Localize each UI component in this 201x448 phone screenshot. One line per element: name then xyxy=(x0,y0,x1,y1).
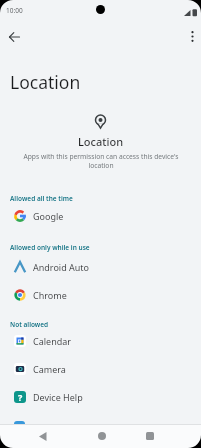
button[interactable]: Android Auto xyxy=(10,256,191,278)
button[interactable]: Google xyxy=(10,205,191,227)
button[interactable] xyxy=(92,426,112,446)
staticText: Location xyxy=(78,134,124,149)
button[interactable]: ? xyxy=(10,386,191,408)
staticText: Camera xyxy=(33,363,66,375)
button[interactable]: Chrome xyxy=(10,284,191,306)
staticText: Apps with this permission can access thi… xyxy=(23,152,179,170)
button[interactable] xyxy=(186,28,198,44)
button[interactable]: Camera xyxy=(10,358,191,380)
staticText: Android Auto xyxy=(33,261,90,273)
staticText: Location xyxy=(10,70,81,94)
staticText: ? xyxy=(18,391,23,403)
staticText: Device Help xyxy=(33,391,83,403)
staticText: Calendar xyxy=(33,335,71,347)
staticText: Chrome xyxy=(33,289,67,301)
staticText: Google xyxy=(33,210,64,222)
button[interactable]: Calendar xyxy=(10,330,191,352)
staticText: Allowed all the time xyxy=(10,194,73,203)
button[interactable] xyxy=(140,426,160,446)
staticText: Allowed only while in use xyxy=(10,243,90,252)
button[interactable] xyxy=(6,28,23,45)
staticText: Not allowed xyxy=(10,320,49,329)
button[interactable] xyxy=(33,426,53,446)
staticText: 10:00 xyxy=(6,6,23,15)
